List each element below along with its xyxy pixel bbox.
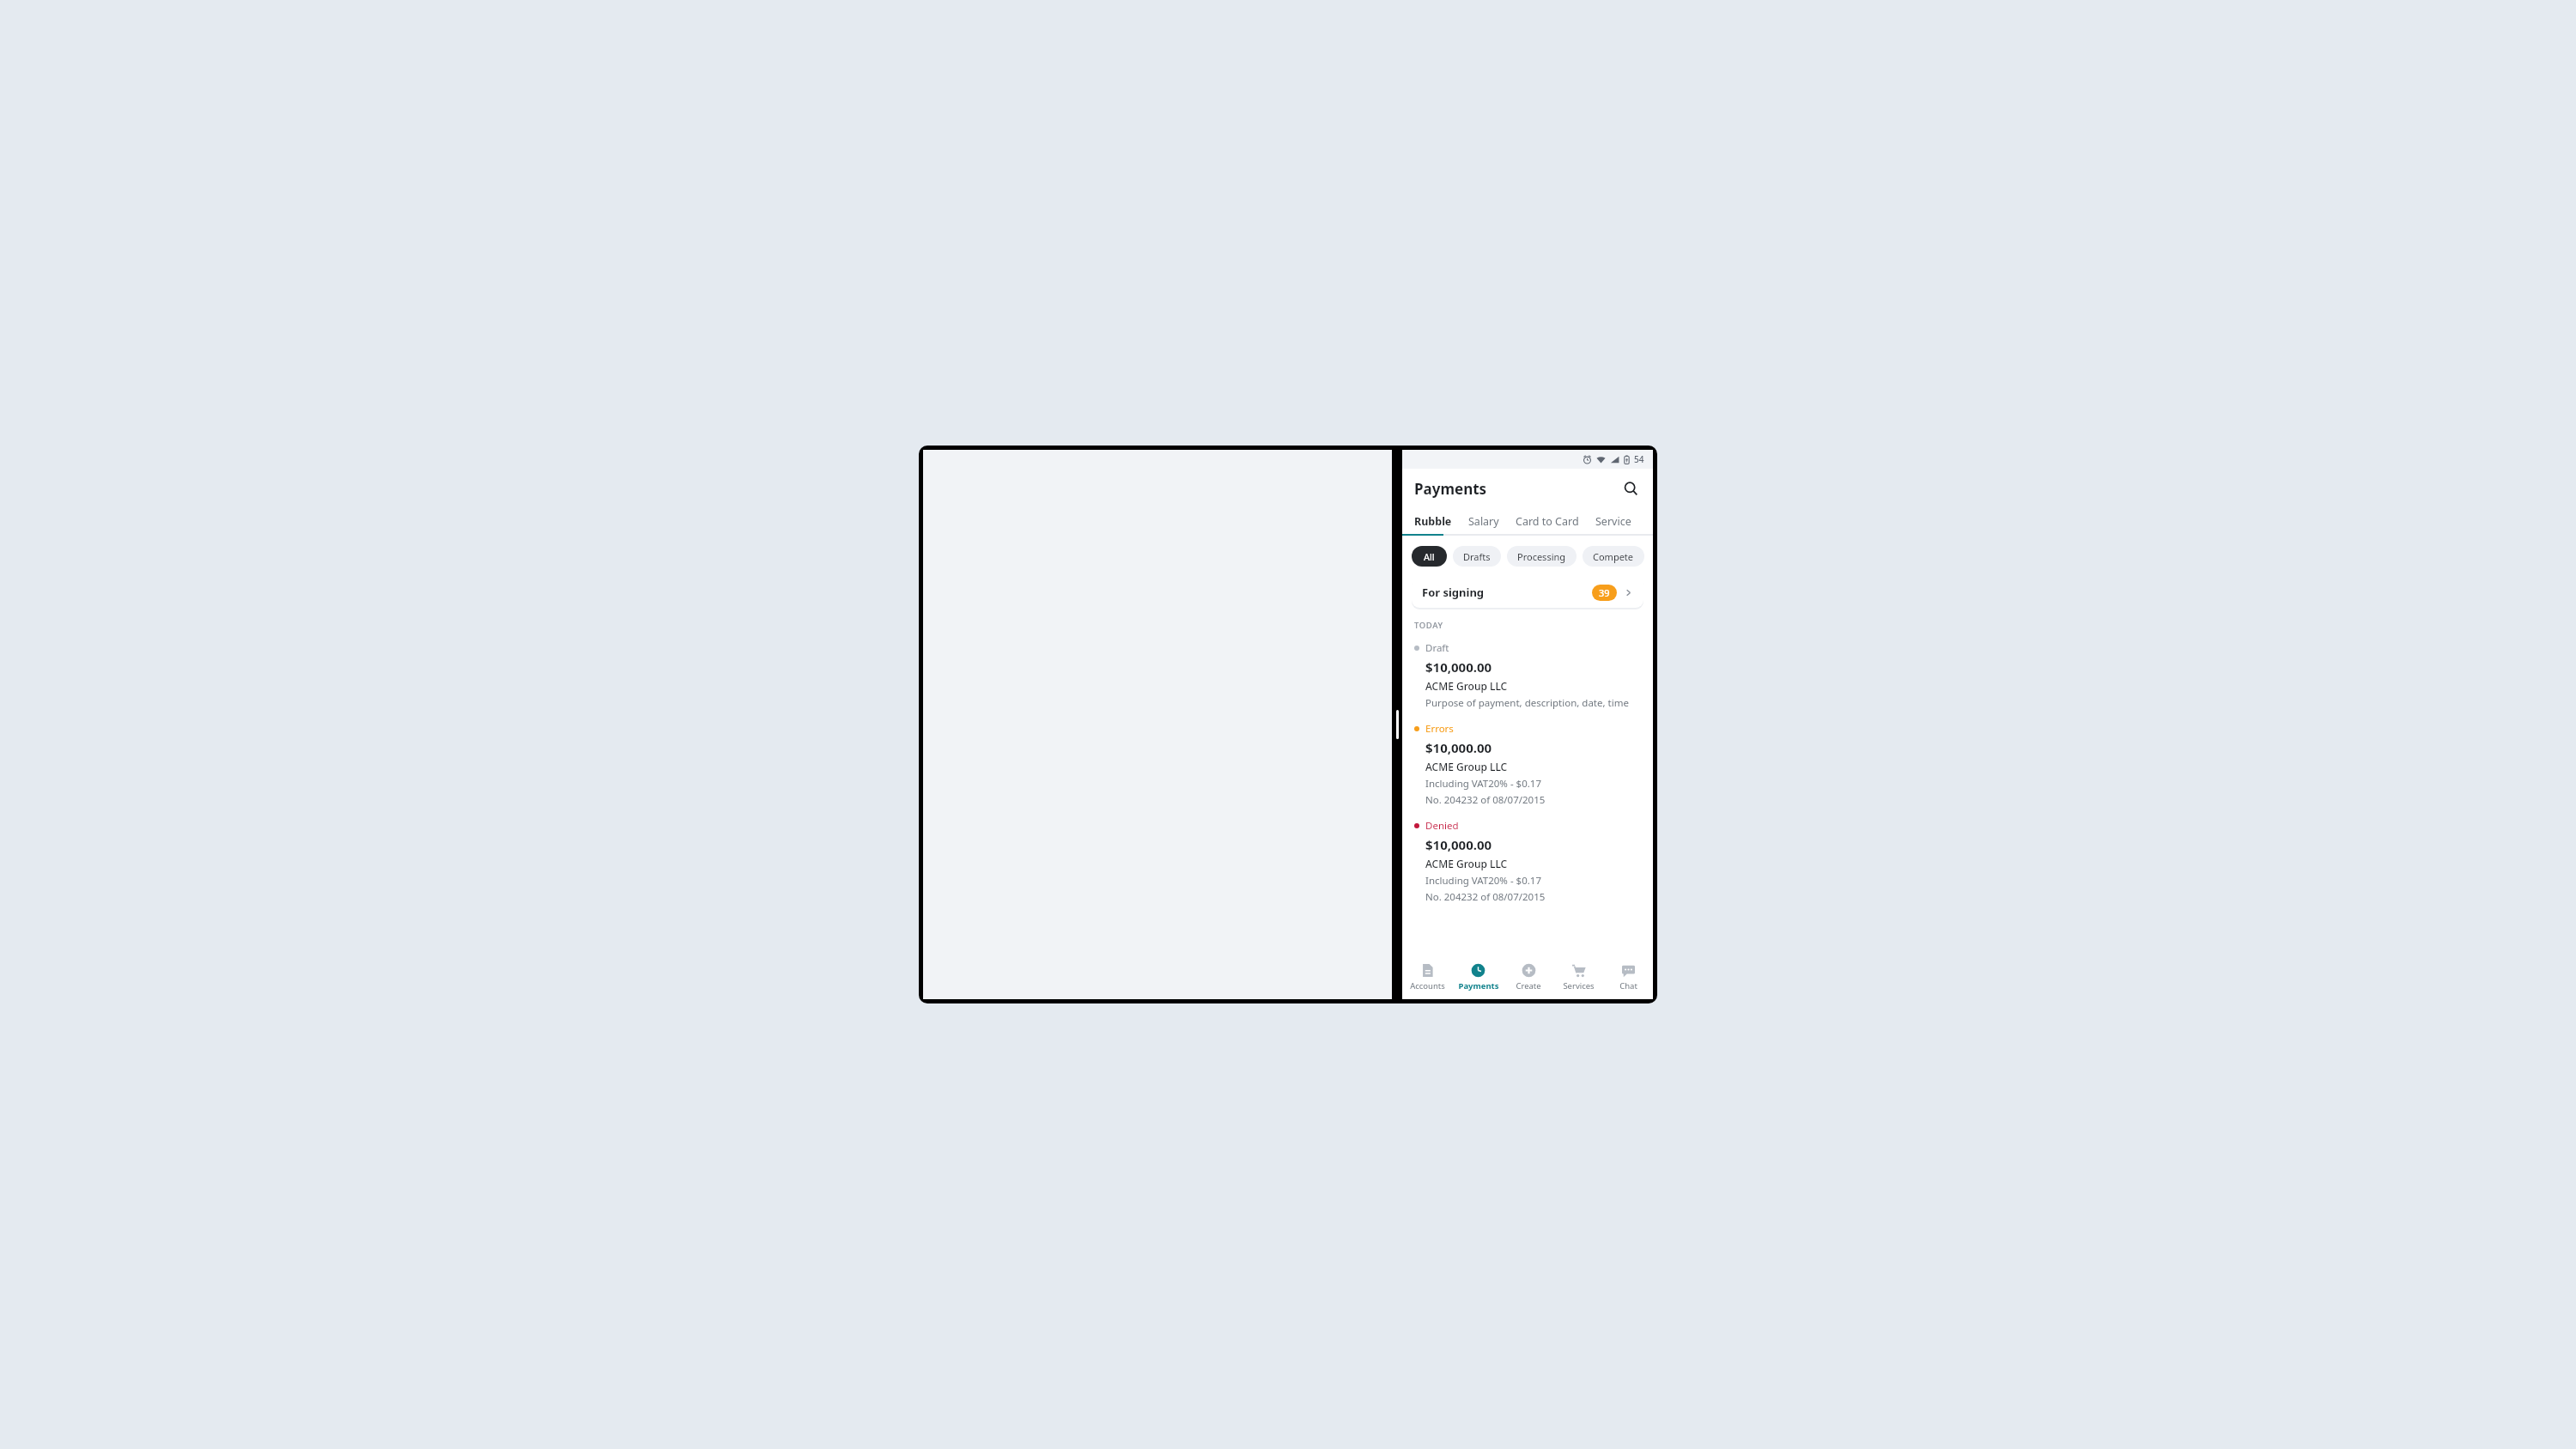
staticText: ACME Group LLC bbox=[1425, 857, 1508, 870]
staticText: Drafts bbox=[1463, 550, 1491, 563]
staticText: Accounts bbox=[1410, 980, 1445, 991]
button[interactable]: Payments bbox=[1453, 958, 1504, 999]
button[interactable]: Create bbox=[1504, 958, 1553, 999]
staticText: TODAY bbox=[1414, 620, 1443, 631]
button[interactable]: Denied bbox=[1402, 819, 1653, 904]
staticText: Purpose of payment, description, date, t… bbox=[1425, 696, 1629, 710]
staticText: Compete bbox=[1593, 550, 1634, 563]
staticText: 39 bbox=[1599, 586, 1610, 599]
button[interactable]: Drafts bbox=[1453, 546, 1501, 567]
button[interactable]: Processing bbox=[1507, 546, 1577, 567]
staticText: Chat bbox=[1619, 980, 1637, 991]
staticText: Card to Card bbox=[1516, 514, 1579, 529]
staticText: Processing bbox=[1517, 550, 1566, 563]
button[interactable]: All bbox=[1412, 546, 1447, 567]
staticText: Payments bbox=[1414, 479, 1487, 499]
staticText: Including VAT20% - $0.17 bbox=[1425, 777, 1541, 791]
staticText: Denied bbox=[1425, 819, 1459, 833]
staticText: No. 204232 of 08/07/2015 bbox=[1425, 890, 1546, 904]
staticText: No. 204232 of 08/07/2015 bbox=[1425, 793, 1546, 807]
button[interactable]: Chat bbox=[1603, 958, 1653, 999]
staticText: All bbox=[1424, 550, 1435, 563]
staticText: Payments bbox=[1458, 980, 1499, 991]
staticText: $10,000.00 bbox=[1425, 836, 1492, 853]
staticText: Services bbox=[1563, 980, 1595, 991]
button[interactable]: Compete bbox=[1583, 546, 1644, 567]
staticText: $10,000.00 bbox=[1425, 658, 1492, 676]
staticText: ACME Group LLC bbox=[1425, 679, 1508, 693]
staticText: Create bbox=[1516, 980, 1541, 991]
staticText: Rubble bbox=[1414, 514, 1452, 529]
button[interactable]: Accounts bbox=[1402, 958, 1453, 999]
staticText: Service bbox=[1595, 514, 1631, 529]
button[interactable]: Services bbox=[1553, 958, 1603, 999]
button[interactable]: For signing bbox=[1412, 577, 1643, 608]
button[interactable]: Card to Card bbox=[1516, 508, 1579, 534]
staticText: Including VAT20% - $0.17 bbox=[1425, 874, 1541, 888]
button[interactable]: Errors bbox=[1402, 722, 1653, 807]
staticText: For signing bbox=[1422, 585, 1485, 600]
button[interactable]: Search bbox=[1617, 475, 1644, 502]
staticText: Salary bbox=[1468, 514, 1499, 529]
button[interactable]: Draft bbox=[1402, 641, 1653, 710]
staticText: 54 bbox=[1634, 453, 1644, 465]
staticText: ACME Group LLC bbox=[1425, 760, 1508, 773]
button[interactable]: Service bbox=[1595, 508, 1631, 534]
staticText: Errors bbox=[1425, 722, 1454, 736]
staticText: $10,000.00 bbox=[1425, 739, 1492, 756]
staticText: Draft bbox=[1425, 641, 1449, 655]
button[interactable]: Salary bbox=[1468, 508, 1499, 534]
button[interactable]: Rubble bbox=[1414, 508, 1452, 534]
